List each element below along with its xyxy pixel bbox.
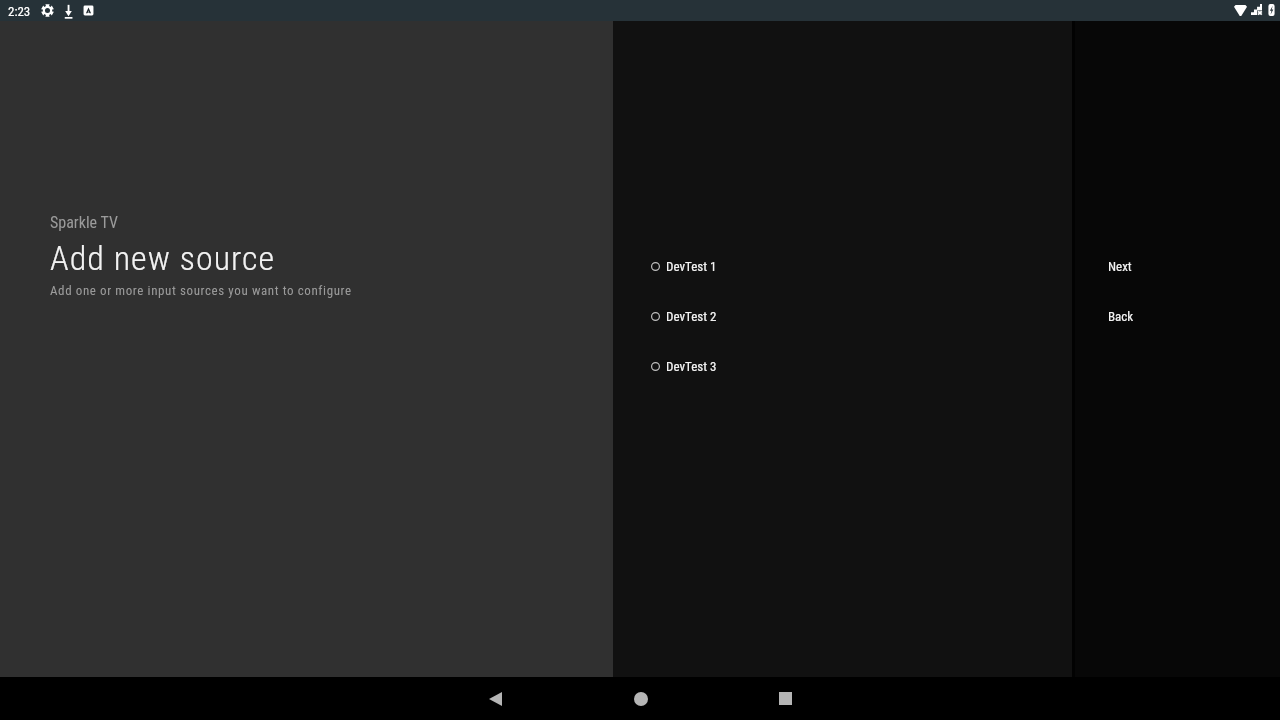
button[interactable]: Home [590, 677, 691, 720]
staticText: Add new source [50, 238, 276, 278]
staticText: DevTest 3 [666, 359, 717, 374]
button[interactable]: Recent apps [735, 677, 836, 720]
staticText: Back [1108, 309, 1134, 324]
staticText: 2:23 [8, 4, 31, 19]
staticText: Sparkle TV [50, 213, 118, 232]
button[interactable]: Back [1108, 306, 1134, 327]
button[interactable]: Next [1108, 256, 1132, 277]
button[interactable]: Back [445, 677, 546, 720]
staticText: Add one or more input sources you want t… [50, 283, 352, 298]
button[interactable]: DevTest 2 [651, 306, 717, 327]
button[interactable]: DevTest 1 [651, 256, 717, 277]
staticText: DevTest 1 [666, 259, 717, 274]
staticText: DevTest 2 [666, 309, 717, 324]
button[interactable]: DevTest 3 [651, 356, 717, 377]
staticText: Next [1108, 259, 1132, 274]
